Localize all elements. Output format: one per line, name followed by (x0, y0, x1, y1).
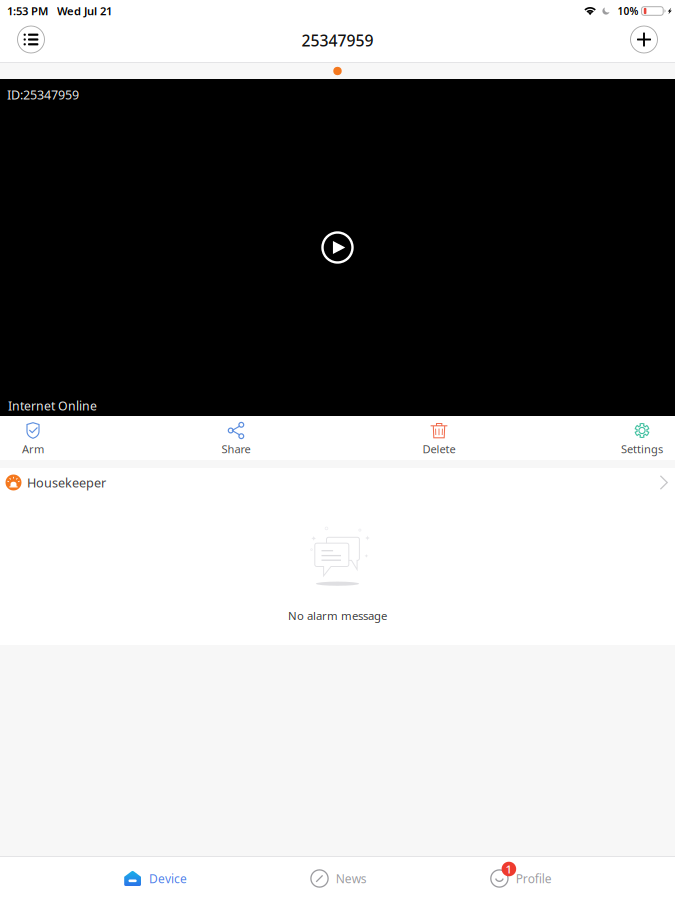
button[interactable]: Delete (337, 416, 540, 460)
button[interactable]: Housekeeper (0, 468, 675, 497)
button[interactable]: Add device (622, 19, 666, 59)
staticText: ID:25347959 (7, 86, 79, 103)
staticText: Profile (516, 870, 552, 887)
staticText: Internet Online (8, 397, 97, 414)
button[interactable]: Settings (540, 416, 675, 460)
button[interactable]: News (310, 856, 367, 900)
button[interactable]: Device (123, 856, 187, 900)
staticText: Delete (422, 441, 455, 457)
staticText: Wed Jul 21 (57, 3, 112, 19)
staticText: Device (149, 870, 187, 887)
button[interactable]: Share (134, 416, 337, 460)
staticText: No alarm message (288, 608, 387, 623)
staticText: Share (221, 441, 250, 457)
button[interactable]: Play (314, 224, 360, 270)
staticText: 10% (617, 4, 638, 18)
button[interactable]: 1 (490, 856, 552, 900)
staticText: 1:53 PM (7, 3, 48, 19)
staticText: News (336, 870, 367, 887)
staticText: Housekeeper (27, 474, 106, 491)
staticText: Arm (22, 441, 44, 457)
staticText: 25347959 (301, 30, 373, 51)
button[interactable]: Menu (9, 19, 53, 59)
staticText: Settings (621, 441, 663, 457)
staticText: 1 (505, 861, 512, 877)
button[interactable]: Arm (0, 416, 134, 460)
